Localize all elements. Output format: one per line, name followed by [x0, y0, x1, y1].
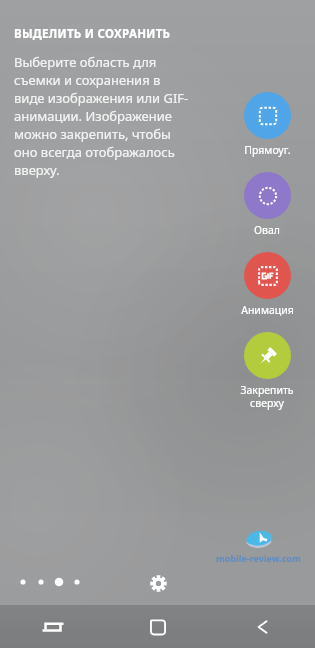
- button[interactable]: Animation GIF: [229, 252, 305, 317]
- button[interactable]: Rectangle select: [229, 92, 305, 157]
- button[interactable]: [18, 577, 82, 587]
- button[interactable]: Settings: [146, 571, 170, 595]
- staticText: Выберите область для съемки и сохранения…: [14, 53, 194, 179]
- staticText: mobile-review.com: [216, 552, 301, 564]
- staticText: ВЫДЕЛИТЬ И СОХРАНИТЬ: [14, 26, 171, 42]
- button[interactable]: Recents: [0, 605, 105, 648]
- button[interactable]: Home: [105, 605, 210, 648]
- staticText: Прямоуг.: [244, 143, 291, 157]
- staticText: Овал: [254, 223, 280, 237]
- button[interactable]: Oval select: [229, 172, 305, 237]
- staticText: Анимация: [241, 303, 294, 317]
- staticText: Закрепить сверху: [240, 383, 294, 410]
- button[interactable]: Back: [210, 605, 315, 648]
- button[interactable]: ВЫДЕЛИТЬ И СОХРАНИТЬ: [14, 26, 171, 42]
- button[interactable]: Pin to top: [229, 332, 305, 410]
